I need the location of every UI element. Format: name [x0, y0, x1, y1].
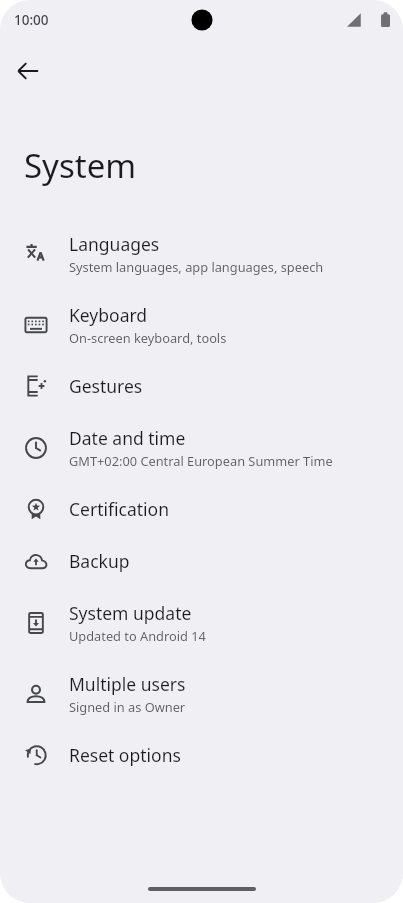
staticText: Date and time: [69, 426, 186, 450]
staticText: Keyboard: [69, 303, 148, 327]
button[interactable]: Date and time: [0, 412, 403, 483]
staticText: System: [24, 143, 137, 188]
button[interactable]: Gestures: [0, 360, 403, 412]
staticText: GMT+02:00 Central European Summer Time: [69, 452, 333, 469]
staticText: Languages: [69, 232, 160, 256]
button[interactable]: Multiple users: [0, 658, 403, 729]
button[interactable]: Back: [8, 51, 48, 91]
staticText: Multiple users: [69, 672, 186, 696]
button[interactable]: Languages: [0, 218, 403, 289]
staticText: 10:00: [14, 11, 49, 29]
button[interactable]: System update: [0, 587, 403, 658]
staticText: System languages, app languages, speech: [69, 258, 324, 275]
staticText: Signed in as Owner: [69, 698, 186, 715]
staticText: Backup: [69, 549, 130, 573]
button[interactable]: Backup: [0, 535, 403, 587]
staticText: Certification: [69, 497, 169, 521]
staticText: Reset options: [69, 743, 181, 767]
button[interactable]: Keyboard: [0, 289, 403, 360]
staticText: Gestures: [69, 374, 143, 398]
staticText: On-screen keyboard, tools: [69, 329, 227, 346]
button[interactable]: Certification: [0, 483, 403, 535]
button[interactable]: Reset options: [0, 729, 403, 781]
staticText: Updated to Android 14: [69, 627, 206, 644]
staticText: System update: [69, 601, 192, 625]
